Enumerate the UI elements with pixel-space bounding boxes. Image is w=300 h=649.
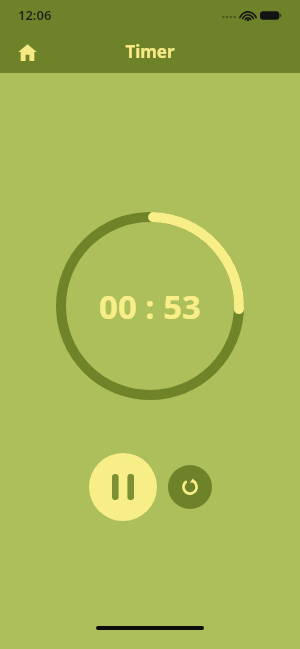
button[interactable]: Home (8, 33, 46, 71)
staticText: 12:06 (18, 6, 52, 24)
button[interactable]: Reset (168, 465, 212, 509)
button[interactable]: Pause (89, 453, 157, 521)
staticText: Timer (125, 40, 175, 63)
staticText: 00 : 53 (99, 284, 201, 329)
